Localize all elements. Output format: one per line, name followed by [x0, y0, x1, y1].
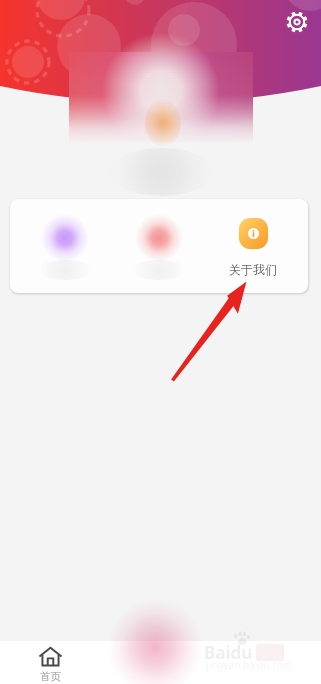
staticText: 首页	[40, 670, 61, 683]
staticText: Baidu	[204, 641, 253, 664]
staticText: 关于我们	[229, 262, 277, 277]
button[interactable]: Settings	[285, 10, 309, 34]
staticText: jingyan.baidu.com	[206, 658, 293, 672]
button[interactable]: 关于我们	[206, 199, 300, 293]
button[interactable]	[112, 199, 206, 293]
button[interactable]: 首页	[20, 641, 80, 684]
button[interactable]	[18, 199, 112, 293]
